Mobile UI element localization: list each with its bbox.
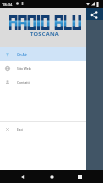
staticText: 18:34 bbox=[2, 2, 13, 7]
staticText: Contatti bbox=[17, 80, 30, 84]
button[interactable]: Share bbox=[88, 9, 99, 20]
button[interactable]: Recents bbox=[75, 172, 85, 182]
button[interactable]: Contatti bbox=[0, 75, 86, 89]
button[interactable]: Back bbox=[18, 172, 28, 182]
button[interactable]: Esci bbox=[0, 122, 86, 136]
staticText: TOSCANA bbox=[30, 30, 60, 38]
staticText: Esci bbox=[17, 127, 23, 131]
staticText: Sito Web bbox=[17, 66, 31, 70]
staticText: On Air bbox=[17, 52, 27, 56]
button[interactable]: Sito Web bbox=[0, 61, 86, 75]
button[interactable]: Home bbox=[47, 172, 57, 182]
button[interactable]: On Air bbox=[0, 47, 86, 61]
